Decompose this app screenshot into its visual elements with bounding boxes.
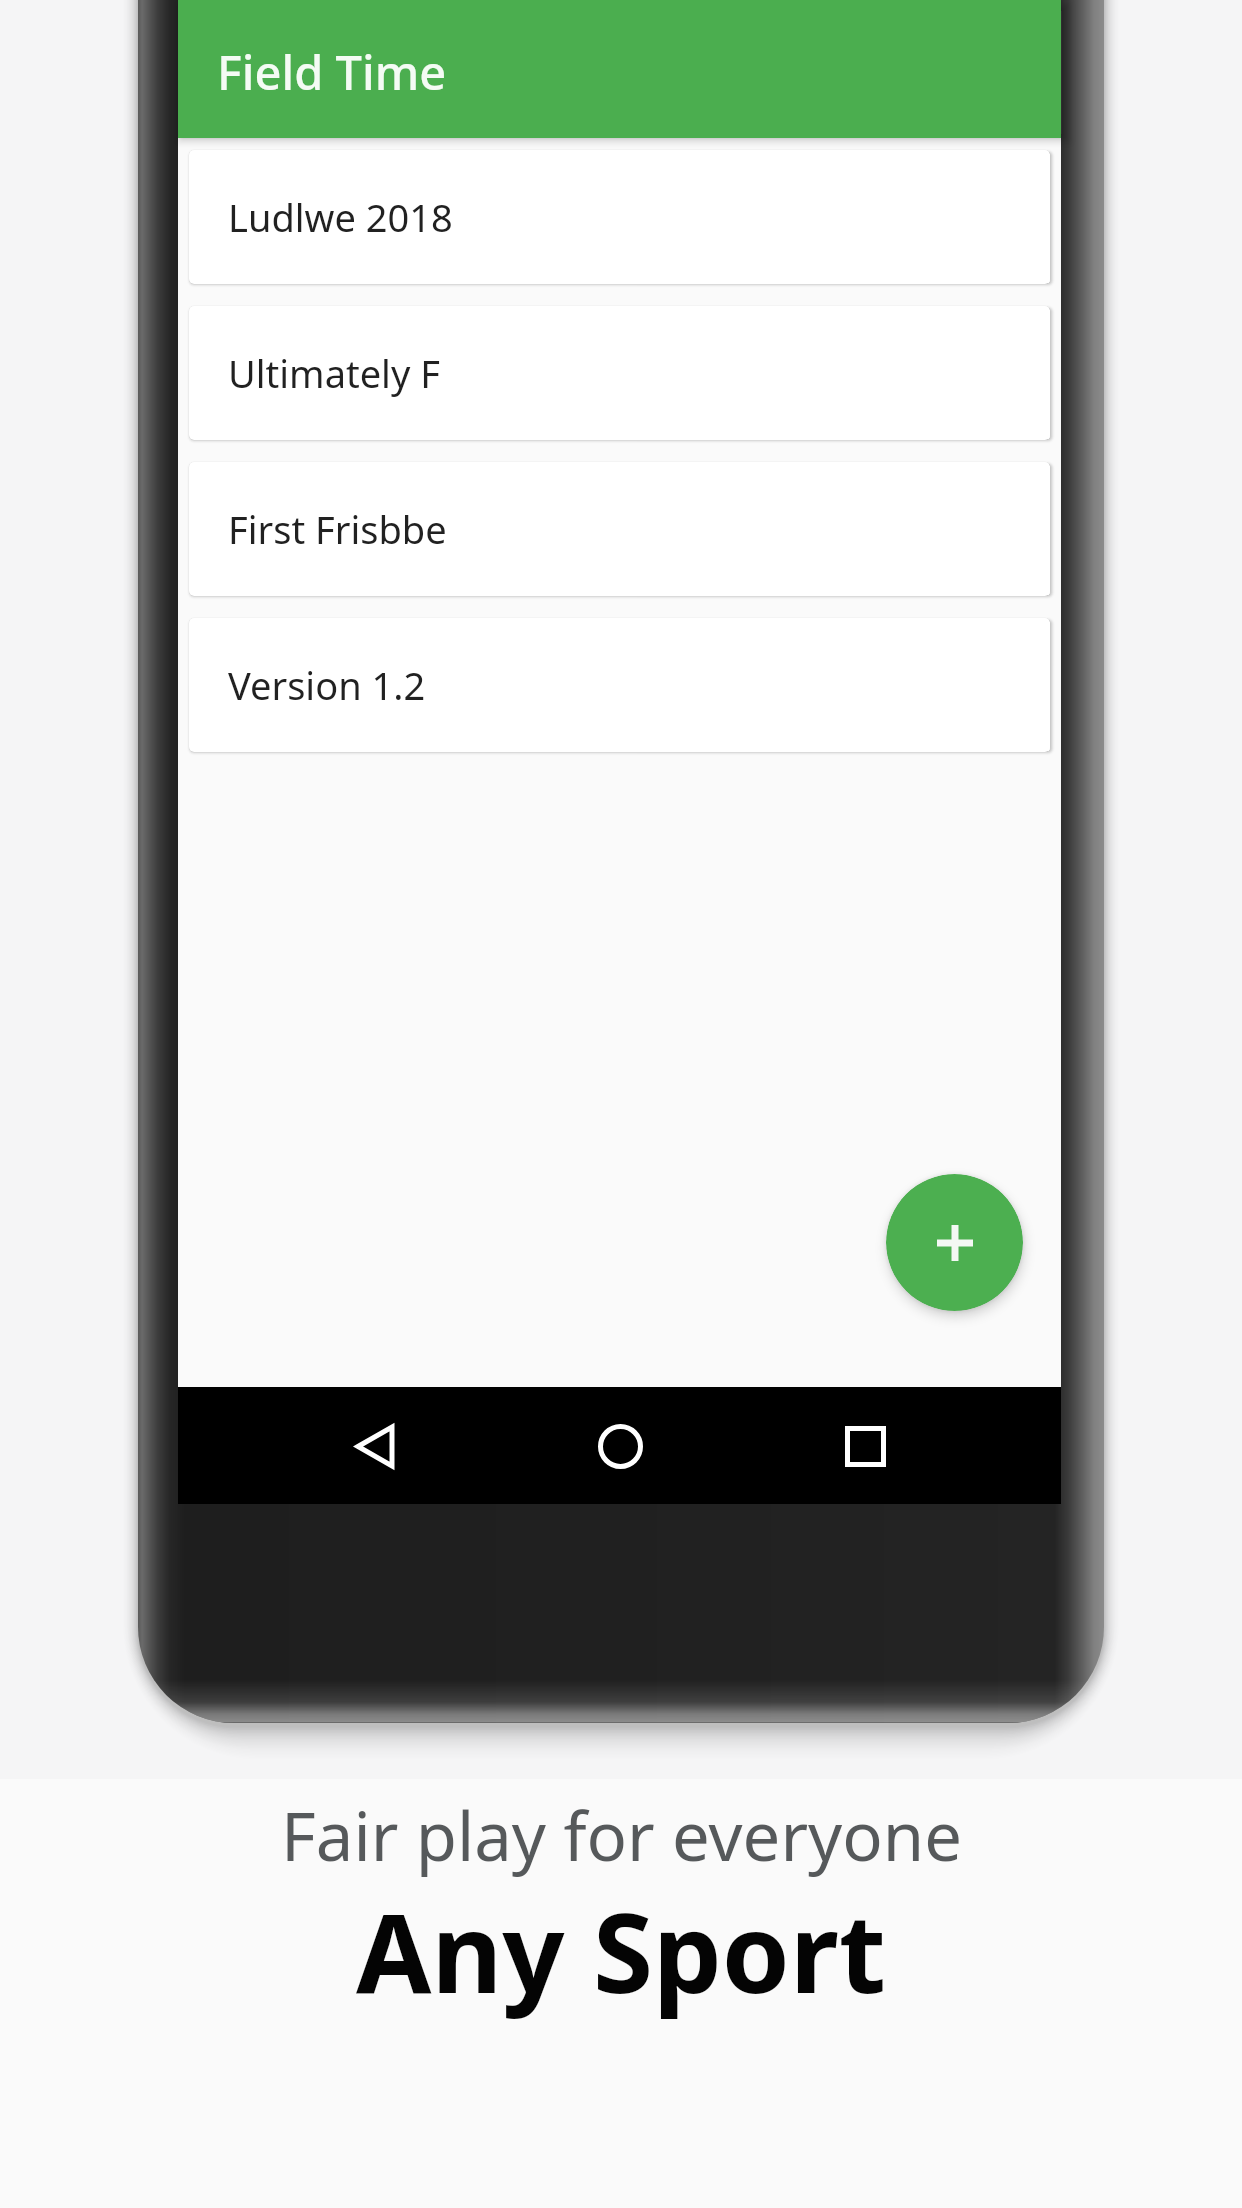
staticText: Any Sport	[356, 1876, 886, 2024]
staticText: Field Time	[217, 40, 447, 104]
button[interactable]: Recents	[815, 1396, 915, 1496]
button[interactable]: Version 1.2	[189, 618, 1050, 752]
staticText: Version 1.2	[228, 659, 426, 711]
button[interactable]: Ludlwe 2018	[189, 150, 1050, 284]
button[interactable]: Ultimately F	[189, 306, 1050, 440]
button[interactable]: Home	[570, 1396, 670, 1496]
button[interactable]: First Frisbbe	[189, 462, 1050, 596]
staticText: First Frisbbe	[228, 503, 447, 555]
staticText: Ultimately F	[228, 347, 440, 399]
button[interactable]: Add	[886, 1174, 1023, 1311]
staticText: Fair play for everyone	[281, 1789, 962, 1880]
button[interactable]: Back	[325, 1396, 425, 1496]
staticText: Ludlwe 2018	[228, 191, 453, 243]
